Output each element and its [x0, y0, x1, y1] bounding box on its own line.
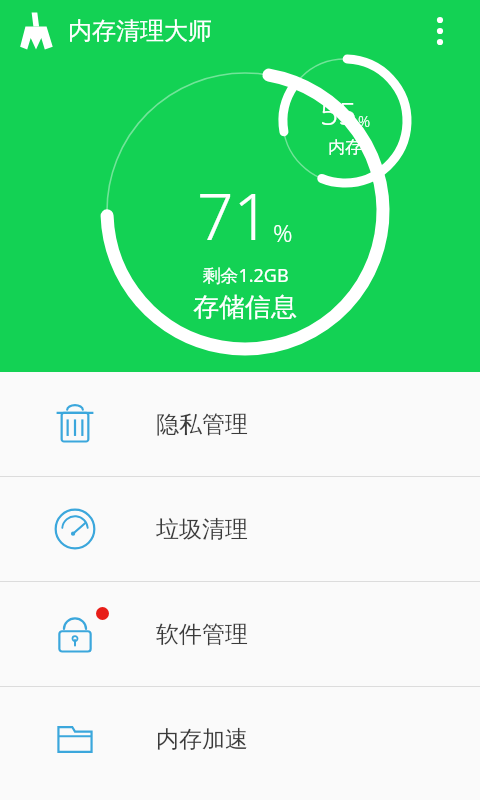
staticText: 内存 — [328, 137, 362, 158]
button[interactable]: 软件管理 — [0, 582, 480, 686]
button[interactable]: 内存加速 — [0, 687, 480, 791]
button[interactable]: 隐私管理 — [0, 372, 480, 476]
button[interactable]: More options — [420, 11, 460, 51]
staticText: % — [273, 216, 293, 249]
staticText: 垃圾清理 — [156, 515, 248, 544]
other: App icon — [14, 9, 58, 53]
staticText: 隐私管理 — [156, 410, 248, 439]
staticText: 71 — [197, 172, 271, 259]
staticText: 软件管理 — [156, 620, 248, 649]
staticText: % — [358, 111, 371, 131]
staticText: 内存加速 — [156, 725, 248, 754]
staticText: 55 — [320, 91, 357, 135]
staticText: 内存清理大师 — [68, 16, 212, 46]
staticText: 存储信息 — [193, 291, 297, 324]
staticText: 剩余1.2GB — [202, 263, 289, 288]
button[interactable]: 垃圾清理 — [0, 477, 480, 581]
